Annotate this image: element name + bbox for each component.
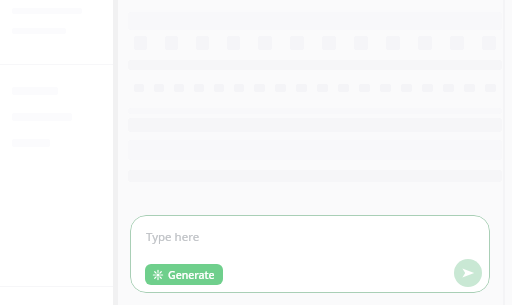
- staticText: Generate: [168, 268, 215, 282]
- button[interactable]: Generate: [145, 264, 223, 285]
- button[interactable]: Type here: [146, 229, 200, 245]
- button[interactable]: Send: [454, 259, 482, 287]
- staticText: Type here: [146, 229, 200, 245]
